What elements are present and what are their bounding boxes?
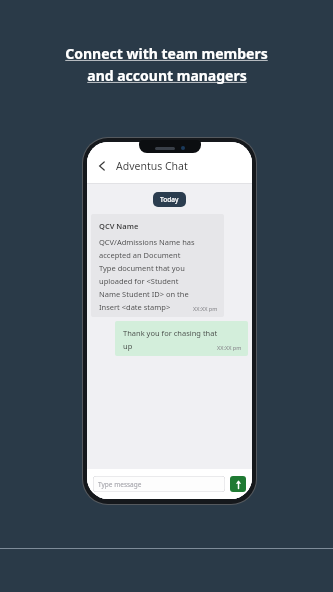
- staticText: Adventus Chat: [116, 159, 188, 173]
- staticText: up: [123, 341, 133, 351]
- staticText: Name Student ID> on the: [99, 289, 189, 299]
- staticText: Type document that you: [99, 263, 185, 273]
- button[interactable]: Send: [230, 476, 246, 492]
- button[interactable]: QCV Name: [91, 214, 224, 317]
- staticText: and account managers: [87, 66, 247, 85]
- staticText: XX:XX pm: [217, 344, 242, 351]
- staticText: uploaded for <Student: [99, 276, 179, 286]
- staticText: accepted an Document: [99, 250, 181, 260]
- staticText: XX:XX pm: [193, 305, 218, 312]
- button[interactable]: Type message: [93, 476, 225, 492]
- staticText: Thank you for chasing that: [123, 328, 218, 338]
- staticText: Connect with team members: [65, 44, 268, 63]
- button[interactable]: Back: [93, 157, 111, 175]
- staticText: QCV/Admissions Name has: [99, 237, 195, 247]
- staticText: QCV Name: [99, 221, 139, 231]
- staticText: Type message: [98, 480, 142, 489]
- staticText: Today: [160, 195, 179, 204]
- button[interactable]: Thank you for chasing that: [115, 321, 248, 356]
- staticText: Insert <date stamp>: [99, 302, 171, 312]
